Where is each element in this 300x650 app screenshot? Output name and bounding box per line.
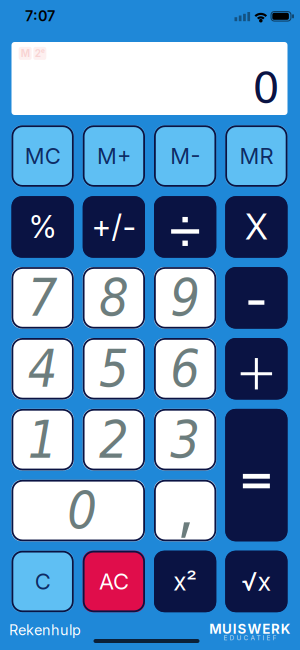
button[interactable] bbox=[154, 196, 216, 258]
staticText: E D U C A T I E F bbox=[223, 634, 276, 642]
staticText: 0 bbox=[252, 63, 279, 113]
button[interactable]: 5 bbox=[83, 338, 145, 399]
staticText: 0 bbox=[67, 480, 97, 541]
staticText: M- bbox=[170, 143, 200, 169]
button[interactable]: MC bbox=[11, 125, 74, 187]
staticText: C bbox=[35, 568, 51, 595]
button[interactable]: X bbox=[225, 196, 287, 258]
staticText: MUISWERK bbox=[209, 621, 291, 637]
button[interactable]: 8 bbox=[83, 267, 145, 329]
staticText: Rekenhulp bbox=[9, 621, 81, 639]
staticText: √x bbox=[241, 566, 271, 597]
button[interactable]: x² bbox=[154, 551, 216, 612]
staticText: 7:07 bbox=[25, 7, 55, 25]
button[interactable]: 1 bbox=[11, 409, 74, 470]
staticText: 6 bbox=[170, 338, 200, 399]
button[interactable] bbox=[225, 338, 287, 399]
staticText: 4 bbox=[28, 338, 58, 399]
button[interactable]: 4 bbox=[11, 338, 74, 399]
staticText: 1 bbox=[28, 409, 58, 470]
staticText: M bbox=[21, 47, 30, 59]
staticText: x² bbox=[173, 566, 197, 596]
button[interactable]: 2 bbox=[83, 409, 145, 470]
button[interactable]: √x bbox=[225, 551, 287, 612]
staticText: 5 bbox=[99, 338, 129, 399]
button[interactable]: M+ bbox=[83, 125, 145, 187]
button[interactable]: C bbox=[11, 551, 74, 612]
staticText: M+ bbox=[97, 143, 131, 169]
button[interactable]: 3 bbox=[154, 409, 216, 470]
button[interactable] bbox=[225, 409, 287, 541]
button[interactable]: +/- bbox=[83, 196, 145, 258]
staticText: 3 bbox=[170, 409, 200, 470]
button[interactable]: 7 bbox=[11, 267, 74, 329]
button[interactable]: % bbox=[11, 196, 74, 258]
staticText: 8 bbox=[99, 268, 129, 328]
button[interactable] bbox=[154, 480, 216, 541]
button[interactable] bbox=[225, 267, 287, 329]
button[interactable]: 9 bbox=[154, 267, 216, 329]
button[interactable]: M- bbox=[154, 125, 216, 187]
button[interactable]: 6 bbox=[154, 338, 216, 399]
button[interactable]: AC bbox=[83, 551, 145, 612]
staticText: 9 bbox=[170, 268, 200, 328]
staticText: 2 bbox=[99, 409, 129, 470]
staticText: % bbox=[29, 208, 57, 245]
staticText: AC bbox=[99, 568, 129, 595]
staticText: MC bbox=[25, 143, 61, 169]
staticText: MR bbox=[239, 143, 273, 169]
button[interactable]: 0 bbox=[11, 480, 145, 541]
staticText: 7 bbox=[28, 268, 58, 328]
staticText: +/- bbox=[91, 208, 136, 245]
staticText: 2ᵉ bbox=[35, 47, 45, 59]
button[interactable]: MR bbox=[225, 125, 287, 187]
staticText: X bbox=[245, 206, 268, 248]
